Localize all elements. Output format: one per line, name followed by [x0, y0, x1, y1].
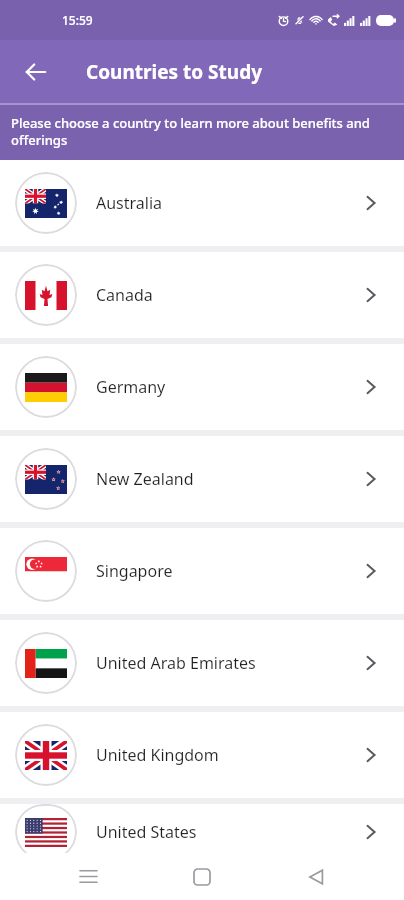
button[interactable]: United States [0, 804, 404, 860]
button[interactable]: Australia [0, 160, 404, 246]
staticText: Countries to Study [86, 59, 262, 85]
button[interactable]: United Kingdom [0, 712, 404, 798]
button[interactable]: Germany [0, 344, 404, 430]
staticText: United States [96, 821, 360, 843]
staticText: 15:59 [62, 12, 93, 28]
staticText: New Zealand [96, 468, 360, 490]
button[interactable]: Home [176, 853, 228, 900]
button[interactable]: United Arab Emirates [0, 620, 404, 706]
button[interactable]: Back [290, 853, 342, 900]
staticText: Australia [96, 192, 360, 214]
button[interactable]: Recents [62, 853, 114, 900]
button[interactable]: Singapore [0, 528, 404, 614]
button[interactable]: New Zealand [0, 436, 404, 522]
staticText: United Kingdom [96, 744, 360, 766]
staticText: United Arab Emirates [96, 652, 360, 674]
staticText: Germany [96, 376, 360, 398]
staticText: Please choose a country to learn more ab… [11, 114, 390, 149]
button[interactable]: Back [14, 50, 58, 94]
staticText: Canada [96, 284, 360, 306]
staticText: Singapore [96, 560, 360, 582]
button[interactable]: Canada [0, 252, 404, 338]
